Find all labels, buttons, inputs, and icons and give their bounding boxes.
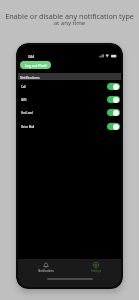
button[interactable]: SMS	[18, 93, 121, 106]
staticText: Voice Mail	[21, 125, 35, 129]
staticText: Notifications	[33, 269, 59, 273]
button[interactable]: Call	[18, 80, 121, 93]
button[interactable]: Voice Mail	[18, 120, 121, 133]
staticText: 2:34	[28, 55, 34, 59]
staticText: at any time	[0, 19, 139, 27]
button[interactable]: SMS notifications	[107, 96, 120, 103]
button[interactable]: Call notifications	[107, 83, 120, 90]
button[interactable]: Notifications	[33, 260, 59, 275]
staticText: SMS	[21, 98, 27, 102]
staticText: Hot Lead	[21, 111, 33, 115]
button[interactable]: Voice Mail notifications	[107, 123, 120, 130]
staticText: Notifications	[20, 75, 40, 79]
button[interactable]: Settings	[83, 260, 109, 275]
button[interactable]: Hot Lead notifications	[107, 109, 120, 116]
button[interactable]: Hot Lead	[18, 106, 121, 119]
staticText: Enable or disable any notification type	[0, 11, 139, 21]
button[interactable]: Log out (Test)	[20, 61, 51, 69]
staticText: Log out (Test)	[25, 63, 47, 68]
staticText: Settings	[83, 269, 109, 273]
staticText: Call	[21, 85, 26, 89]
